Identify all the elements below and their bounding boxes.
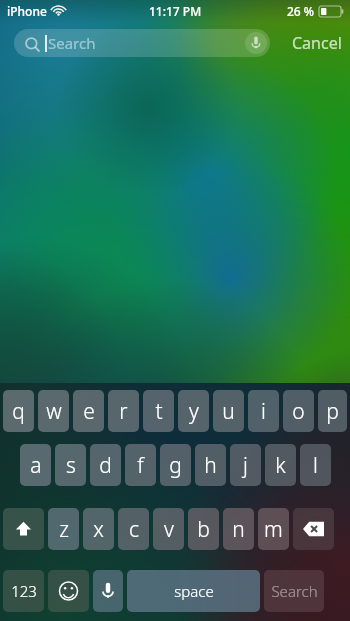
staticText: o [292,397,305,426]
staticText: h [204,451,217,480]
button[interactable]: Voice search [245,32,267,54]
staticText: f [137,451,144,480]
button[interactable]: Shift [3,508,44,550]
staticText: y [189,397,199,426]
staticText: Search [48,33,96,53]
button[interactable]: l [300,444,331,486]
staticText: t [155,397,163,426]
button[interactable]: Dictation [93,570,123,612]
staticText: 11:17 PM [149,3,202,19]
button[interactable]: Emoji [48,570,89,612]
staticText: Cancel [292,32,342,54]
button[interactable]: w [38,390,69,432]
button[interactable]: Backspace [293,508,334,550]
staticText: iPhone [7,3,47,19]
staticText: b [197,515,210,544]
staticText: u [222,397,235,426]
button[interactable]: g [160,444,191,486]
button[interactable]: p [318,390,347,432]
button[interactable]: v [153,508,184,550]
staticText: w [46,397,62,426]
staticText: j [243,451,248,480]
button[interactable]: o [283,390,314,432]
button[interactable]: r [108,390,139,432]
button[interactable]: Cancel [292,32,342,54]
button[interactable]: b [188,508,219,550]
button[interactable]: h [195,444,226,486]
staticText: i [261,397,266,426]
staticText: Search [271,581,318,601]
staticText: a [30,451,42,480]
button[interactable]: m [258,508,289,550]
button[interactable]: d [90,444,121,486]
button[interactable]: y [178,390,209,432]
staticText: q [12,397,25,426]
button[interactable]: x [83,508,114,550]
staticText: n [232,515,245,544]
button[interactable]: f [125,444,156,486]
staticText: e [83,397,95,426]
staticText: p [326,397,339,426]
button[interactable]: 123 [3,570,44,612]
button[interactable]: a [20,444,51,486]
staticText: 26 % [287,3,315,19]
button[interactable]: s [55,444,86,486]
staticText: v [164,515,174,544]
staticText: r [119,397,128,426]
button[interactable]: k [265,444,296,486]
button[interactable]: u [213,390,244,432]
staticText: c [129,515,139,544]
staticText: d [99,451,112,480]
button[interactable]: c [118,508,149,550]
button[interactable]: Search [264,570,324,612]
button[interactable]: z [48,508,79,550]
button[interactable]: i [248,390,279,432]
staticText: l [313,451,318,480]
staticText: z [59,515,69,544]
button[interactable]: e [73,390,104,432]
staticText: g [169,451,182,480]
button[interactable]: t [143,390,174,432]
staticText: space [174,581,214,601]
staticText: s [66,451,76,480]
button[interactable]: space [127,570,260,612]
button[interactable]: n [223,508,254,550]
staticText: x [93,515,104,544]
staticText: 123 [11,581,37,601]
button[interactable]: j [230,444,261,486]
staticText: k [275,451,286,480]
button[interactable]: q [3,390,34,432]
staticText: m [264,515,283,544]
button[interactable]: Search [14,29,270,57]
